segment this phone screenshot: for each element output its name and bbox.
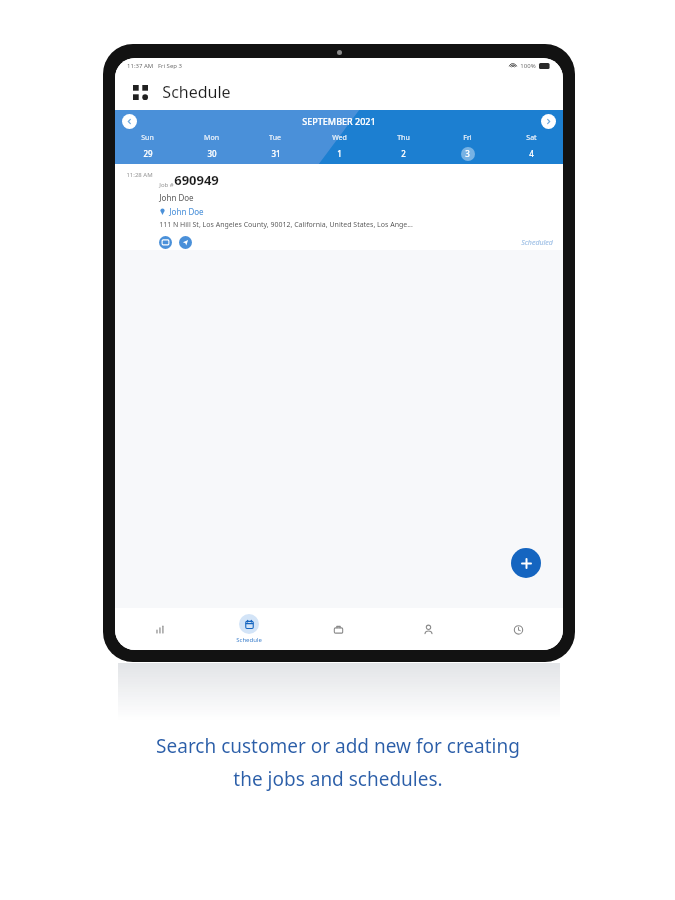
- staticText: SEPTEMBER 2021: [302, 115, 376, 127]
- button[interactable]: Job #: [159, 171, 553, 250]
- staticText: 29: [143, 148, 153, 159]
- button[interactable]: Sat: [499, 132, 563, 164]
- button[interactable]: Add job: [511, 548, 541, 578]
- button[interactable]: Message: [159, 236, 172, 249]
- button[interactable]: Menu: [128, 80, 152, 104]
- staticText: 3: [465, 148, 470, 159]
- staticText: Fri: [463, 133, 472, 143]
- staticText: 31: [271, 148, 281, 159]
- staticText: 100%: [520, 62, 536, 70]
- staticText: Wed: [332, 133, 347, 143]
- staticText: 11:37 AM Fri Sep 3: [127, 62, 182, 70]
- staticText: Schedule: [162, 81, 231, 103]
- staticText: Scheduled: [521, 238, 553, 248]
- staticText: 690949: [174, 171, 219, 189]
- button[interactable]: Thu: [371, 132, 435, 164]
- button[interactable]: Wed: [307, 132, 371, 164]
- button[interactable]: Timer: [473, 608, 563, 650]
- button[interactable]: Schedule: [204, 608, 293, 650]
- staticText: Mon: [204, 133, 219, 143]
- button[interactable]: Jobs: [293, 608, 383, 650]
- staticText: Thu: [397, 133, 410, 143]
- staticText: John Doe: [169, 206, 204, 217]
- button[interactable]: Next month: [541, 114, 556, 129]
- button[interactable]: Navigate: [179, 236, 192, 249]
- button[interactable]: Mon: [179, 132, 243, 164]
- staticText: 11:28 AM: [126, 171, 153, 179]
- button[interactable]: Tue: [243, 132, 307, 164]
- staticText: 1: [337, 148, 342, 159]
- staticText: John Doe: [159, 192, 194, 203]
- button[interactable]: Fri: [435, 132, 499, 164]
- staticText: Job #: [159, 181, 174, 189]
- button[interactable]: Sun: [115, 132, 179, 164]
- button[interactable]: Previous month: [122, 114, 137, 129]
- button[interactable]: Profile: [383, 608, 473, 650]
- staticText: Sun: [141, 133, 154, 143]
- staticText: 4: [529, 148, 534, 159]
- staticText: 30: [207, 148, 217, 159]
- staticText: the jobs and schedules.: [233, 766, 443, 792]
- staticText: Schedule: [236, 636, 262, 644]
- staticText: 2: [401, 148, 406, 159]
- staticText: Search customer or add new for creating: [156, 733, 520, 759]
- staticText: Tue: [269, 133, 281, 143]
- button[interactable]: Reports: [115, 608, 204, 650]
- staticText: Sat: [526, 133, 537, 143]
- staticText: 111 N Hill St, Los Angeles County, 90012…: [159, 220, 413, 230]
